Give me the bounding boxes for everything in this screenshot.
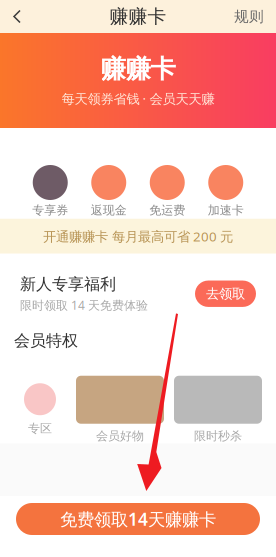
button[interactable]: Back [0, 1, 34, 31]
staticText: 会员好物 [96, 429, 144, 443]
button[interactable]: 会员专区 [14, 383, 66, 436]
staticText: 免费领取14天赚赚卡 [60, 507, 216, 530]
button[interactable]: 新人专享福利 [0, 254, 276, 320]
button[interactable]: 专享券 [21, 165, 79, 218]
button[interactable]: 免运费 [138, 165, 196, 218]
staticText: 专享券 [32, 203, 68, 218]
button[interactable]: 会员好物 [76, 376, 164, 443]
staticText: 去领取 [206, 286, 245, 302]
staticText: 规则 [234, 7, 264, 25]
staticText: 限时秒杀 [194, 429, 242, 443]
staticText: 专区 [28, 421, 52, 436]
button[interactable]: 加速卡 [196, 165, 255, 218]
staticText: 加速卡 [208, 203, 244, 218]
staticText: 开通赚赚卡 每月最高可省 200 元 [43, 227, 233, 245]
button[interactable]: 限时秒杀 [174, 376, 262, 443]
staticText: 新人专享福利 [20, 274, 116, 294]
staticText: 赚赚卡 [109, 5, 166, 28]
staticText: 会员特权 [14, 331, 78, 351]
staticText: 限时领取 14 天免费体验 [20, 297, 148, 313]
staticText: 免运费 [149, 203, 185, 218]
staticText: 返现金 [91, 203, 127, 218]
staticText: 赚赚卡 [100, 54, 175, 85]
staticText: 每天领券省钱 · 会员天天赚 [61, 90, 214, 107]
button[interactable]: 返现金 [79, 165, 138, 218]
button[interactable]: 免费领取14天赚赚卡 [16, 503, 260, 535]
button[interactable]: 规则 [222, 0, 276, 33]
button[interactable]: 会员特权 [0, 320, 276, 362]
